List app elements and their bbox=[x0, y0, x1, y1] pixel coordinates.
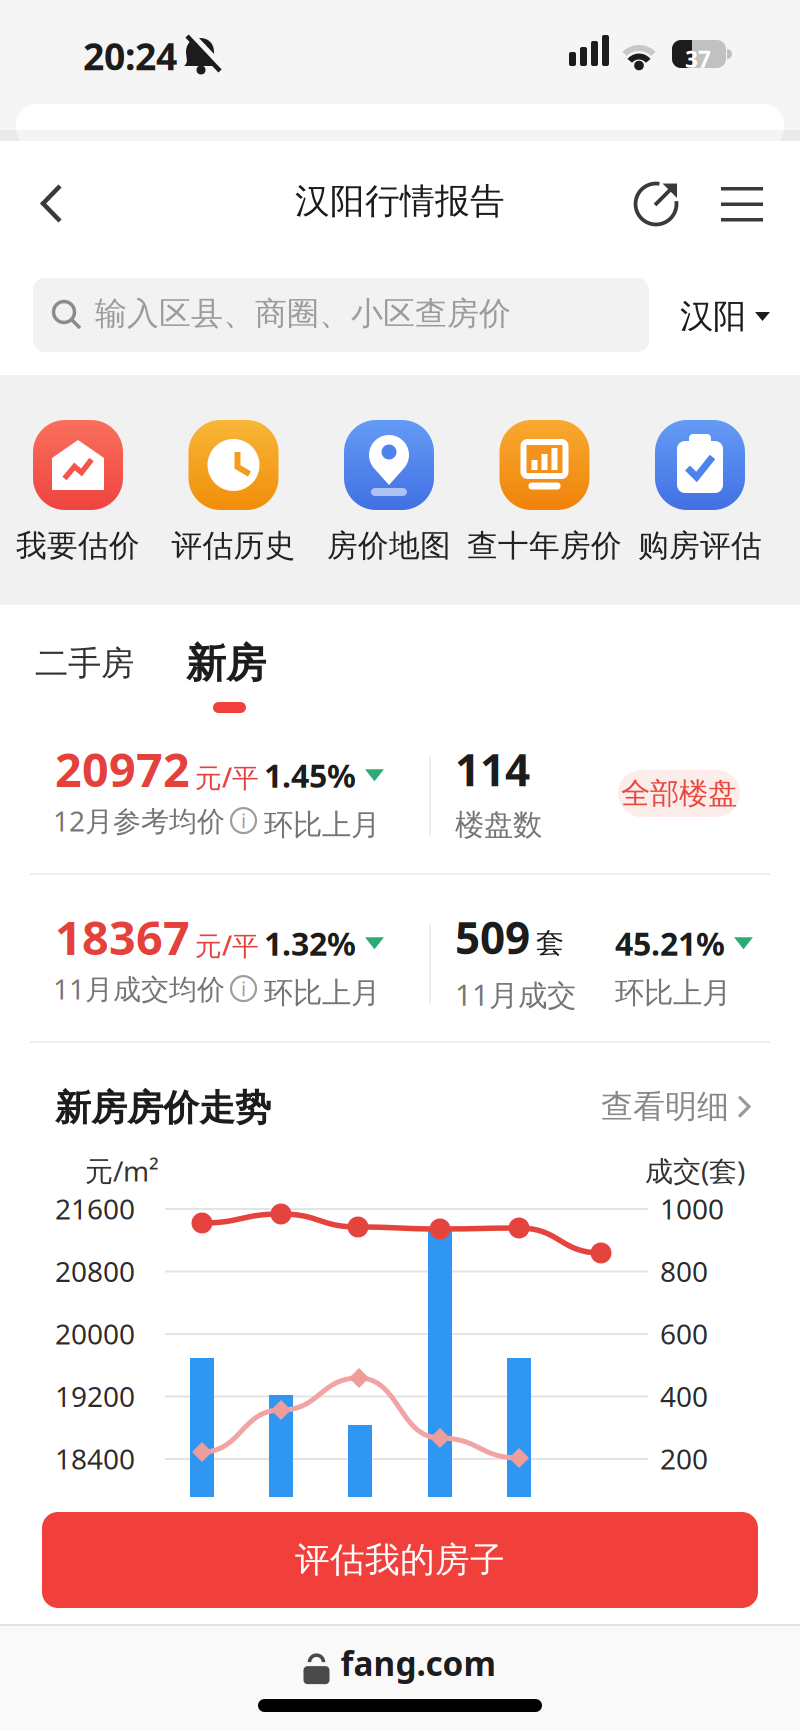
staticText: 环比上月 bbox=[615, 975, 731, 1011]
staticText: 成交(套) bbox=[645, 1152, 745, 1189]
staticText: 19200 bbox=[55, 1377, 135, 1415]
staticText: 查十年房价 bbox=[467, 527, 622, 565]
button[interactable]: 评估历史 bbox=[188, 420, 278, 565]
staticText: 18400 bbox=[55, 1440, 135, 1477]
staticText: 购房评估 bbox=[638, 527, 762, 565]
staticText: 800 bbox=[660, 1252, 708, 1290]
staticText: 新房 bbox=[186, 639, 266, 688]
staticText: 20:24 bbox=[83, 31, 177, 81]
staticText: 20000 bbox=[55, 1315, 135, 1352]
staticText: 509 bbox=[455, 908, 530, 966]
button[interactable]: 选择城市 bbox=[0, 262, 90, 303]
staticText: 1.45% bbox=[264, 754, 356, 796]
staticText: 1000 bbox=[660, 1190, 724, 1227]
staticText: 房价地图 bbox=[327, 527, 451, 565]
staticText: 20972 bbox=[55, 738, 190, 800]
staticText: 我要估价 bbox=[16, 527, 140, 565]
staticText: 400 bbox=[660, 1377, 708, 1415]
staticText: 37 bbox=[685, 44, 711, 74]
staticText: 评估我的房子 bbox=[295, 1539, 505, 1581]
staticText: 18367 bbox=[55, 906, 190, 968]
staticText: 输入区县、商圈、小区查房价 bbox=[95, 294, 511, 333]
staticText: 45.21% bbox=[615, 922, 725, 964]
button[interactable]: 新房 bbox=[0, 605, 80, 654]
staticText: fang.com bbox=[340, 1641, 496, 1685]
button[interactable]: 搜索 bbox=[0, 262, 616, 336]
button[interactable]: 评估我的房子 bbox=[0, 1497, 716, 1593]
staticText: 查看明细 bbox=[601, 1087, 729, 1126]
staticText: 114 bbox=[455, 740, 530, 798]
button[interactable]: 说明 bbox=[231, 976, 256, 1001]
button[interactable]: 房价地图 bbox=[344, 420, 434, 565]
staticText: 楼盘数 bbox=[455, 807, 542, 843]
staticText: 新房房价走势 bbox=[55, 1086, 271, 1130]
staticText: 11月成交 bbox=[455, 975, 576, 1014]
staticText: 20800 bbox=[55, 1252, 135, 1290]
staticText: 环比上月 bbox=[264, 975, 380, 1011]
staticText: 200 bbox=[660, 1440, 708, 1477]
staticText: 元/平 bbox=[195, 928, 259, 963]
staticText: 环比上月 bbox=[264, 807, 380, 843]
staticText: 元/m² bbox=[85, 1152, 159, 1189]
staticText: 汉阳 bbox=[680, 296, 746, 337]
staticText: 全部楼盘 bbox=[621, 775, 737, 811]
staticText: 11月成交均价 bbox=[53, 970, 225, 1007]
staticText: i bbox=[241, 807, 246, 834]
button[interactable]: 说明 bbox=[231, 808, 256, 833]
staticText: 12月参考均价 bbox=[53, 802, 225, 839]
button[interactable]: 购房评估 bbox=[655, 420, 745, 565]
staticText: 1.32% bbox=[264, 922, 356, 964]
staticText: 评估历史 bbox=[171, 527, 295, 565]
staticText: 汉阳行情报告 bbox=[295, 180, 505, 223]
button[interactable]: 查十年房价 bbox=[499, 420, 589, 565]
staticText: 套 bbox=[536, 926, 564, 960]
button[interactable]: 全部楼盘 bbox=[0, 730, 122, 777]
staticText: 二手房 bbox=[35, 643, 134, 684]
button[interactable]: 我要估价 bbox=[33, 420, 123, 565]
staticText: i bbox=[241, 975, 246, 1002]
staticText: 21600 bbox=[55, 1190, 135, 1227]
staticText: 元/平 bbox=[195, 760, 259, 795]
button[interactable]: 查看明细 bbox=[0, 1041, 151, 1080]
staticText: 600 bbox=[660, 1315, 708, 1352]
